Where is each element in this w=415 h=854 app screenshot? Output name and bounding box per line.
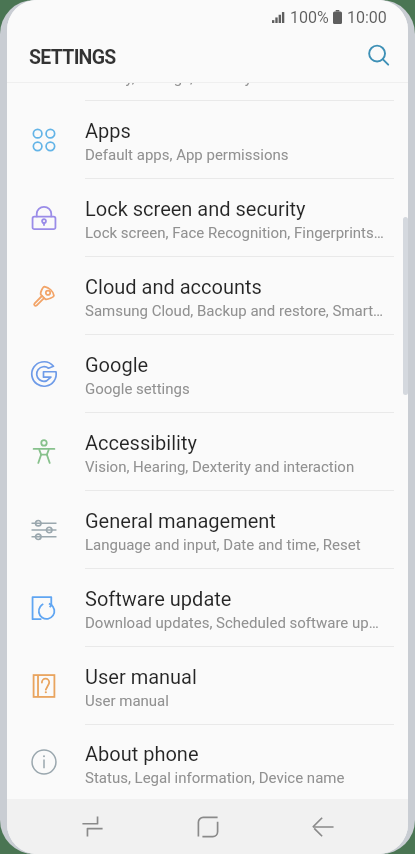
staticText: Default apps, App permissions — [85, 146, 289, 164]
staticText: General management — [85, 509, 276, 532]
staticText: 10:00 — [347, 8, 387, 27]
button[interactable]: Battery, Storage, Memory — [7, 83, 408, 100]
staticText: About phone — [85, 742, 199, 765]
button[interactable]: Lock screen and security — [7, 179, 408, 256]
staticText: SETTINGS — [29, 46, 116, 69]
staticText: Apps — [85, 119, 131, 142]
staticText: Download updates, Scheduled software up… — [85, 614, 379, 632]
staticText: Language and input, Date and time, Reset — [85, 536, 361, 554]
button[interactable]: General management — [7, 491, 408, 568]
staticText: 100% — [290, 8, 329, 27]
button[interactable]: Apps — [7, 101, 408, 178]
staticText: Google settings — [85, 380, 190, 398]
staticText: Cloud and accounts — [85, 275, 262, 298]
button[interactable]: Google — [7, 335, 408, 412]
button[interactable]: Recent apps — [62, 799, 122, 854]
staticText: User manual — [85, 665, 197, 688]
staticText: Status, Legal information, Device name — [85, 769, 345, 787]
button[interactable]: Search — [358, 38, 398, 78]
staticText: Accessibility — [85, 431, 197, 454]
staticText: Software update — [85, 587, 232, 610]
button[interactable]: User manual — [7, 647, 408, 724]
staticText: Samsung Cloud, Backup and restore, Smart… — [85, 302, 384, 320]
staticText: Vision, Hearing, Dexterity and interacti… — [85, 458, 355, 476]
staticText: Lock screen, Face Recognition, Fingerpri… — [85, 224, 384, 242]
staticText: Battery, Storage, Memory — [85, 69, 252, 86]
button[interactable]: Back — [293, 799, 353, 854]
button[interactable]: About phone — [7, 725, 408, 799]
staticText: Google — [85, 353, 149, 376]
button[interactable]: Home — [178, 799, 238, 854]
staticText: User manual — [85, 692, 169, 710]
button[interactable]: Accessibility — [7, 413, 408, 490]
button[interactable]: Cloud and accounts — [7, 257, 408, 334]
staticText: Lock screen and security — [85, 197, 306, 220]
button[interactable]: Software update — [7, 569, 408, 646]
